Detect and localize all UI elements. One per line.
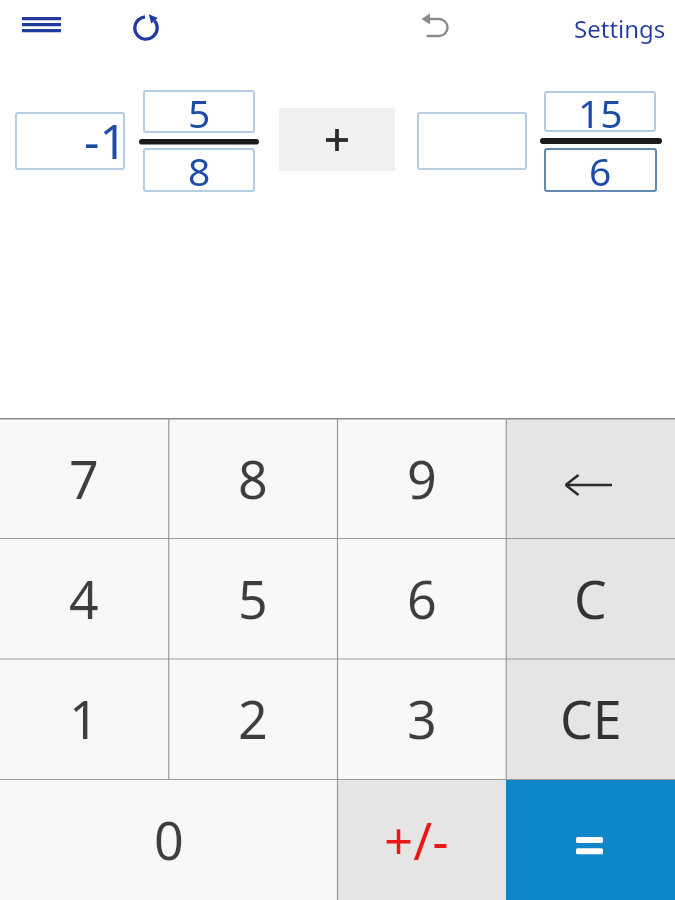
staticText: +/-: [384, 805, 449, 874]
staticText: 6: [407, 563, 437, 634]
staticText: 7: [69, 443, 99, 514]
staticText: 8: [188, 144, 211, 197]
button[interactable]: 0: [0, 779, 337, 900]
staticText: 1: [69, 683, 99, 754]
button[interactable]: [10, 5, 72, 45]
button[interactable]: 1: [0, 658, 168, 779]
staticText: 0: [154, 804, 184, 875]
staticText: 6: [589, 144, 612, 197]
button[interactable]: CE: [506, 658, 675, 779]
button[interactable]: [279, 108, 395, 171]
button[interactable]: Settings: [560, 8, 675, 48]
button[interactable]: 7: [0, 418, 168, 538]
staticText: 2: [238, 683, 268, 754]
button[interactable]: 8: [143, 148, 255, 192]
staticText: Settings: [574, 12, 666, 45]
button[interactable]: 9: [337, 418, 506, 538]
button[interactable]: 6: [337, 538, 506, 658]
button[interactable]: 2: [168, 658, 337, 779]
button[interactable]: 8: [168, 418, 337, 538]
staticText: 3: [407, 683, 437, 754]
button[interactable]: [506, 418, 675, 538]
button[interactable]: 6: [544, 148, 657, 192]
button[interactable]: 15: [544, 91, 656, 132]
button[interactable]: [506, 779, 675, 900]
button[interactable]: [126, 7, 166, 47]
staticText: CE: [560, 683, 622, 754]
staticText: 5: [188, 86, 211, 139]
button[interactable]: [409, 1, 457, 49]
button[interactable]: C: [506, 538, 675, 658]
button[interactable]: 3: [337, 658, 506, 779]
button[interactable]: 5: [143, 90, 255, 133]
staticText: C: [574, 563, 607, 634]
staticText: -1: [84, 108, 127, 173]
staticText: 5: [238, 563, 268, 634]
button[interactable]: +/-: [337, 779, 506, 900]
staticText: 8: [238, 443, 268, 514]
staticText: 4: [69, 563, 99, 634]
staticText: 15: [578, 86, 623, 139]
button[interactable]: 4: [0, 538, 168, 658]
button[interactable]: [417, 112, 527, 170]
staticText: 9: [407, 443, 437, 514]
button[interactable]: -1: [15, 112, 125, 170]
button[interactable]: 5: [168, 538, 337, 658]
